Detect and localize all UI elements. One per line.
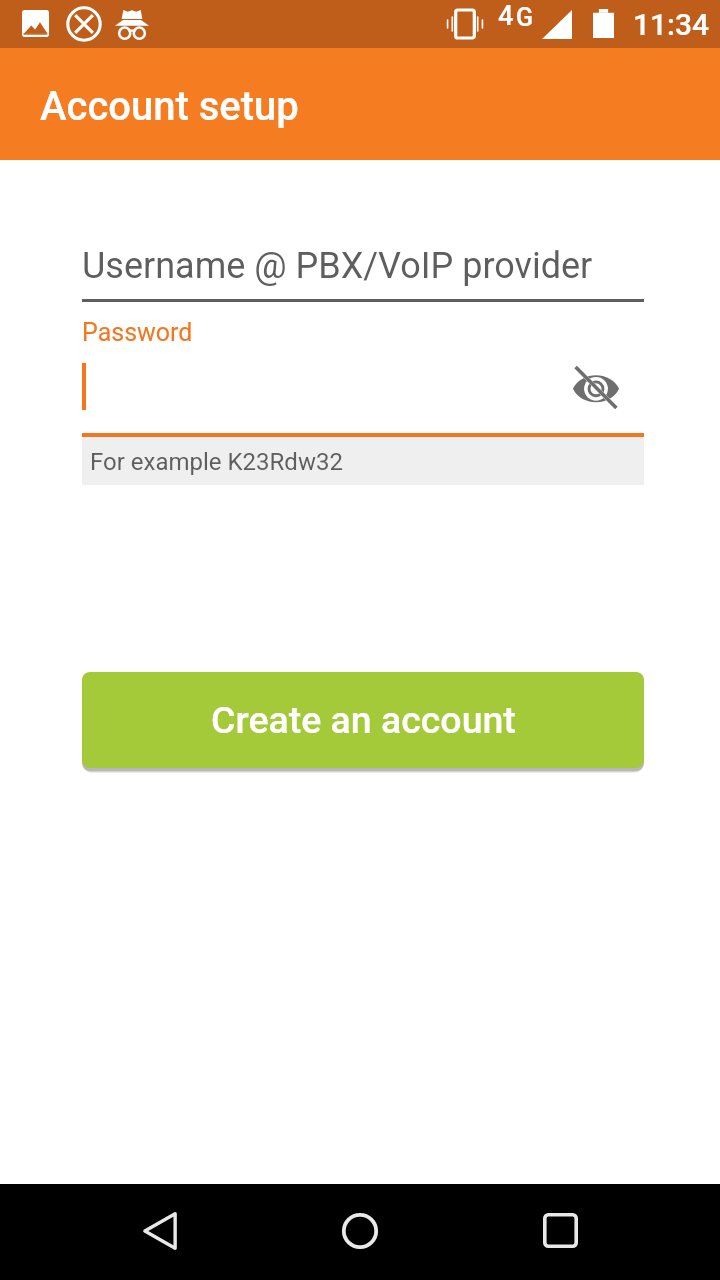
staticText: Password (82, 318, 193, 347)
staticText: G (516, 3, 534, 32)
button[interactable]: Show password (568, 359, 624, 415)
button[interactable]: Create an account (82, 672, 644, 768)
button[interactable]: Show password (82, 355, 644, 417)
button[interactable]: Stop (60, 0, 108, 48)
button[interactable]: Recent apps (520, 1192, 600, 1272)
staticText: Account setup (40, 83, 299, 130)
button[interactable]: Incognito (108, 0, 156, 48)
staticText: Username @ PBX/VoIP provider (82, 245, 593, 287)
staticText: 4 (498, 0, 514, 32)
button[interactable]: Home (320, 1192, 400, 1272)
button[interactable]: Username @ PBX/VoIP provider (82, 236, 644, 300)
button[interactable]: Back (120, 1192, 200, 1272)
staticText: 11:34 (633, 7, 710, 42)
staticText: For example K23Rdw32 (90, 448, 343, 476)
staticText: Create an account (211, 698, 516, 742)
button[interactable]: Screenshot (8, 0, 62, 48)
